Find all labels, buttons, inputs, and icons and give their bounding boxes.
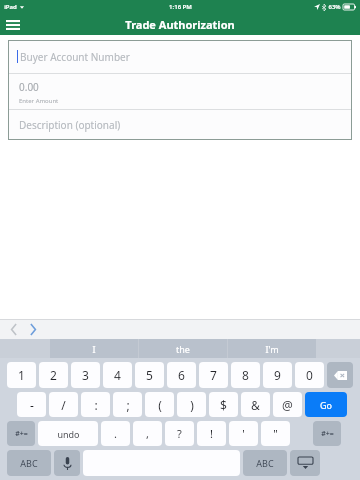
button[interactable]: 0.00 (8, 74, 352, 109)
staticText: : (94, 397, 98, 413)
staticText: 1 (18, 367, 25, 383)
button[interactable]: 2 (39, 362, 68, 388)
button[interactable]: 1 (7, 362, 36, 388)
button[interactable]: undo (38, 421, 98, 446)
button[interactable]: Previous field (5, 321, 22, 338)
button[interactable]: . (101, 421, 130, 446)
button[interactable]: I (50, 339, 138, 358)
button[interactable]: , (133, 421, 162, 446)
button[interactable]: 7 (199, 362, 228, 388)
button[interactable]: / (49, 392, 78, 417)
staticText: Enter Amount (19, 97, 59, 105)
button[interactable]: Buyer Account Number (8, 40, 352, 73)
staticText: Description (optional) (19, 118, 121, 132)
staticText: ABC (20, 457, 38, 469)
staticText: 0 (306, 367, 313, 383)
staticText: Trade Authorization (125, 17, 235, 32)
staticText: & (251, 397, 260, 413)
staticText: #+= (15, 429, 28, 439)
button[interactable]: ; (113, 392, 142, 417)
button[interactable]: 3 (71, 362, 100, 388)
button[interactable]: Backspace (327, 362, 353, 388)
staticText: 6 (178, 367, 185, 383)
staticText: ABC (256, 457, 274, 469)
button[interactable]: ) (177, 392, 206, 417)
staticText: ! (210, 426, 213, 441)
button[interactable]: I'm (228, 339, 316, 358)
staticText: 5 (146, 367, 153, 383)
staticText: / (61, 397, 66, 413)
button[interactable]: : (81, 392, 110, 417)
button[interactable]: & (241, 392, 270, 417)
button[interactable]: 9 (263, 362, 292, 388)
button[interactable]: ' (229, 421, 258, 446)
button[interactable]: - (17, 392, 46, 417)
button[interactable]: Menu (0, 14, 26, 35)
staticText: #+= (321, 429, 334, 439)
button[interactable]: Next field (24, 321, 41, 338)
button[interactable]: Go (305, 392, 347, 417)
staticText: . (114, 426, 117, 441)
staticText: I'm (265, 343, 279, 355)
staticText: 9 (274, 367, 281, 383)
button[interactable]: Hide keyboard (290, 450, 320, 476)
button[interactable]: 8 (231, 362, 260, 388)
staticText: 2 (50, 367, 57, 383)
button[interactable]: " (261, 421, 290, 446)
button[interactable]: @ (273, 392, 302, 417)
button[interactable]: 4 (103, 362, 132, 388)
button[interactable]: the (139, 339, 227, 358)
staticText: ) (190, 397, 194, 413)
button[interactable]: ? (165, 421, 194, 446)
staticText: $ (220, 397, 227, 413)
staticText: " (273, 426, 278, 441)
staticText: I (92, 343, 96, 355)
staticText: ' (242, 426, 245, 441)
button[interactable]: ( (145, 392, 174, 417)
staticText: 1:16 PM (169, 3, 192, 11)
button[interactable]: Description (optional) (8, 110, 352, 140)
staticText: 3 (82, 367, 89, 383)
button[interactable]: Dictate (54, 450, 80, 476)
staticText: , (146, 426, 149, 441)
staticText: iPad (4, 3, 17, 11)
staticText: 8 (242, 367, 249, 383)
staticText: the (176, 343, 190, 355)
button[interactable]: 5 (135, 362, 164, 388)
staticText: ? (177, 426, 182, 441)
staticText: 7 (210, 367, 217, 383)
button[interactable]: 6 (167, 362, 196, 388)
staticText: - (30, 397, 34, 413)
button[interactable]: #+= (7, 421, 35, 446)
staticText: ( (158, 397, 162, 413)
staticText: 0.00 (19, 80, 39, 94)
staticText: ; (126, 397, 130, 413)
button[interactable]: ABC (243, 450, 287, 476)
staticText: Buyer Account Number (20, 50, 130, 64)
staticText: 4 (114, 367, 121, 383)
staticText: undo (57, 428, 80, 440)
button[interactable]: 0 (295, 362, 324, 388)
button[interactable]: $ (209, 392, 238, 417)
button[interactable]: #+= (313, 421, 341, 446)
staticText: 63% (328, 3, 341, 11)
staticText: Go (320, 399, 332, 411)
button[interactable]: ! (197, 421, 226, 446)
staticText: @ (282, 397, 293, 413)
button[interactable]: ABC (7, 450, 51, 476)
